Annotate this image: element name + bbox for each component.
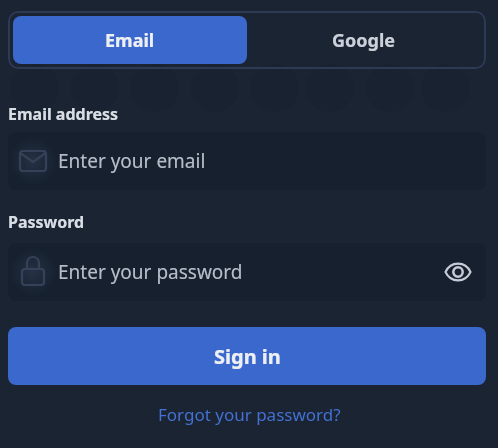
staticText: Enter your email [58, 148, 206, 174]
button[interactable]: Enter your email [8, 132, 486, 190]
button[interactable] [436, 250, 480, 294]
staticText: Forgot your password? [158, 403, 341, 426]
button[interactable]: Enter your password [8, 243, 486, 301]
staticText: Enter your password [58, 259, 243, 285]
button[interactable]: Google [247, 16, 481, 64]
staticText: Password [8, 211, 85, 233]
staticText: Google [332, 28, 396, 53]
button[interactable]: Email [13, 16, 247, 64]
button[interactable]: Forgot your password? [158, 403, 341, 426]
staticText: Email address [8, 103, 119, 125]
staticText: Email [105, 28, 155, 53]
button[interactable]: Sign in [8, 327, 486, 385]
staticText: Sign in [214, 343, 281, 370]
